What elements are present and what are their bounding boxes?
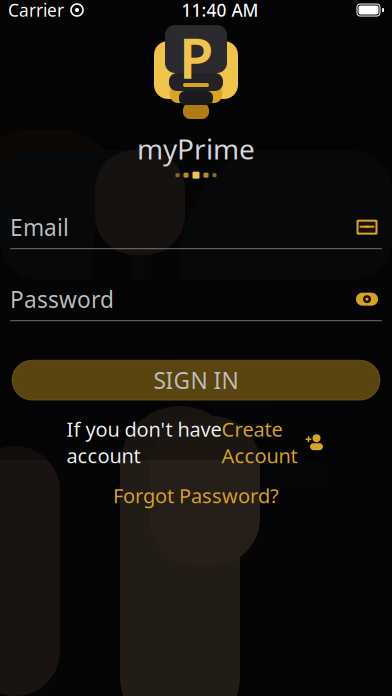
- button[interactable]: Forgot Password?: [99, 478, 293, 513]
- staticText: P: [179, 20, 213, 94]
- button[interactable]: Email: [352, 215, 382, 239]
- staticText: SIGN IN: [153, 365, 238, 395]
- staticText: Create Account: [221, 416, 297, 469]
- staticText: Password: [10, 284, 114, 314]
- button[interactable]: Show password: [352, 287, 382, 311]
- staticText: Forgot Password?: [113, 482, 279, 509]
- staticText: Carrier: [8, 0, 64, 21]
- button[interactable]: Create Account: [221, 413, 325, 472]
- button[interactable]: SIGN IN: [0, 358, 392, 402]
- staticText: Email: [10, 212, 69, 242]
- staticText: If you don't have account: [66, 416, 221, 469]
- staticText: myPrime: [137, 130, 255, 167]
- staticText: 11:40 AM: [181, 0, 258, 21]
